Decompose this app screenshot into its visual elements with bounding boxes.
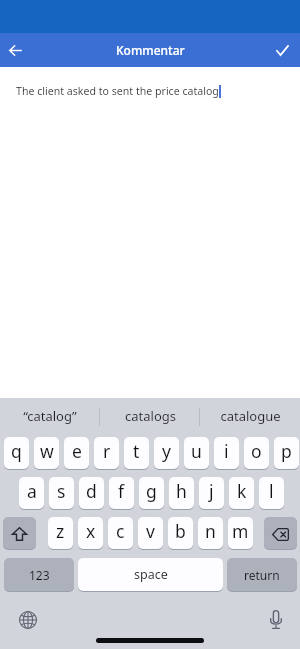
button[interactable]: Back — [0, 35, 30, 65]
button[interactable]: p — [274, 437, 299, 469]
button[interactable]: 123 — [4, 558, 74, 591]
button[interactable]: z — [48, 517, 73, 549]
button[interactable]: s — [49, 477, 74, 509]
staticText: m — [232, 519, 249, 543]
staticText: z — [56, 519, 65, 543]
staticText: k — [237, 479, 247, 503]
staticText: q — [11, 439, 22, 463]
button[interactable]: Save — [266, 34, 298, 66]
button[interactable]: u — [184, 437, 209, 469]
staticText: c — [116, 519, 125, 543]
button[interactable]: m — [228, 517, 253, 549]
button[interactable]: catalogs — [100, 398, 200, 432]
button[interactable]: l — [259, 477, 284, 509]
staticText: return — [244, 567, 280, 583]
button[interactable]: n — [198, 517, 223, 549]
staticText: f — [118, 479, 125, 503]
button[interactable]: o — [244, 437, 269, 469]
button[interactable]: b — [168, 517, 193, 549]
staticText: n — [205, 519, 216, 543]
button[interactable]: Shift — [3, 517, 36, 549]
button[interactable]: f — [109, 477, 134, 509]
button[interactable]: g — [139, 477, 164, 509]
staticText: g — [146, 479, 157, 503]
staticText: v — [146, 519, 155, 543]
button[interactable]: v — [138, 517, 163, 549]
staticText: i — [224, 439, 229, 463]
staticText: t — [133, 439, 140, 463]
button[interactable]: r — [94, 437, 119, 469]
button[interactable]: d — [79, 477, 104, 509]
staticText: l — [269, 479, 274, 503]
button[interactable]: t — [124, 437, 149, 469]
button[interactable]: y — [154, 437, 179, 469]
button[interactable]: catalogue — [200, 398, 300, 432]
button[interactable]: q — [4, 437, 29, 469]
staticText: x — [86, 519, 96, 543]
button[interactable]: Voice input — [264, 607, 288, 631]
staticText: h — [176, 479, 187, 503]
staticText: Kommentar — [116, 42, 185, 58]
staticText: “catalog” — [23, 407, 77, 425]
button[interactable]: a — [19, 477, 44, 509]
staticText: y — [162, 439, 171, 463]
button[interactable]: e — [64, 437, 89, 469]
button[interactable]: return — [227, 558, 297, 591]
staticText: r — [103, 439, 111, 463]
button[interactable]: j — [199, 477, 224, 509]
staticText: s — [57, 479, 66, 503]
button[interactable]: k — [229, 477, 254, 509]
staticText: catalogs — [125, 407, 176, 425]
button[interactable]: w — [34, 437, 59, 469]
staticText: j — [209, 479, 214, 503]
staticText: o — [251, 439, 262, 463]
button[interactable]: c — [108, 517, 133, 549]
staticText: w — [40, 439, 54, 463]
button[interactable]: x — [78, 517, 103, 549]
staticText: u — [191, 439, 202, 463]
staticText: e — [72, 439, 82, 463]
button[interactable]: h — [169, 477, 194, 509]
staticText: b — [175, 519, 186, 543]
staticText: 123 — [29, 567, 50, 583]
staticText: space — [134, 566, 168, 583]
button[interactable]: Backspace — [264, 517, 297, 549]
staticText: d — [86, 479, 97, 503]
staticText: catalogue — [220, 407, 281, 425]
staticText: a — [27, 479, 37, 503]
button[interactable]: Change keyboard language — [16, 608, 40, 632]
button[interactable]: space — [78, 558, 223, 591]
button[interactable]: i — [214, 437, 239, 469]
staticText: p — [281, 439, 292, 463]
button[interactable]: “catalog” — [0, 398, 100, 432]
staticText: The client asked to sent the price catal… — [16, 84, 219, 98]
